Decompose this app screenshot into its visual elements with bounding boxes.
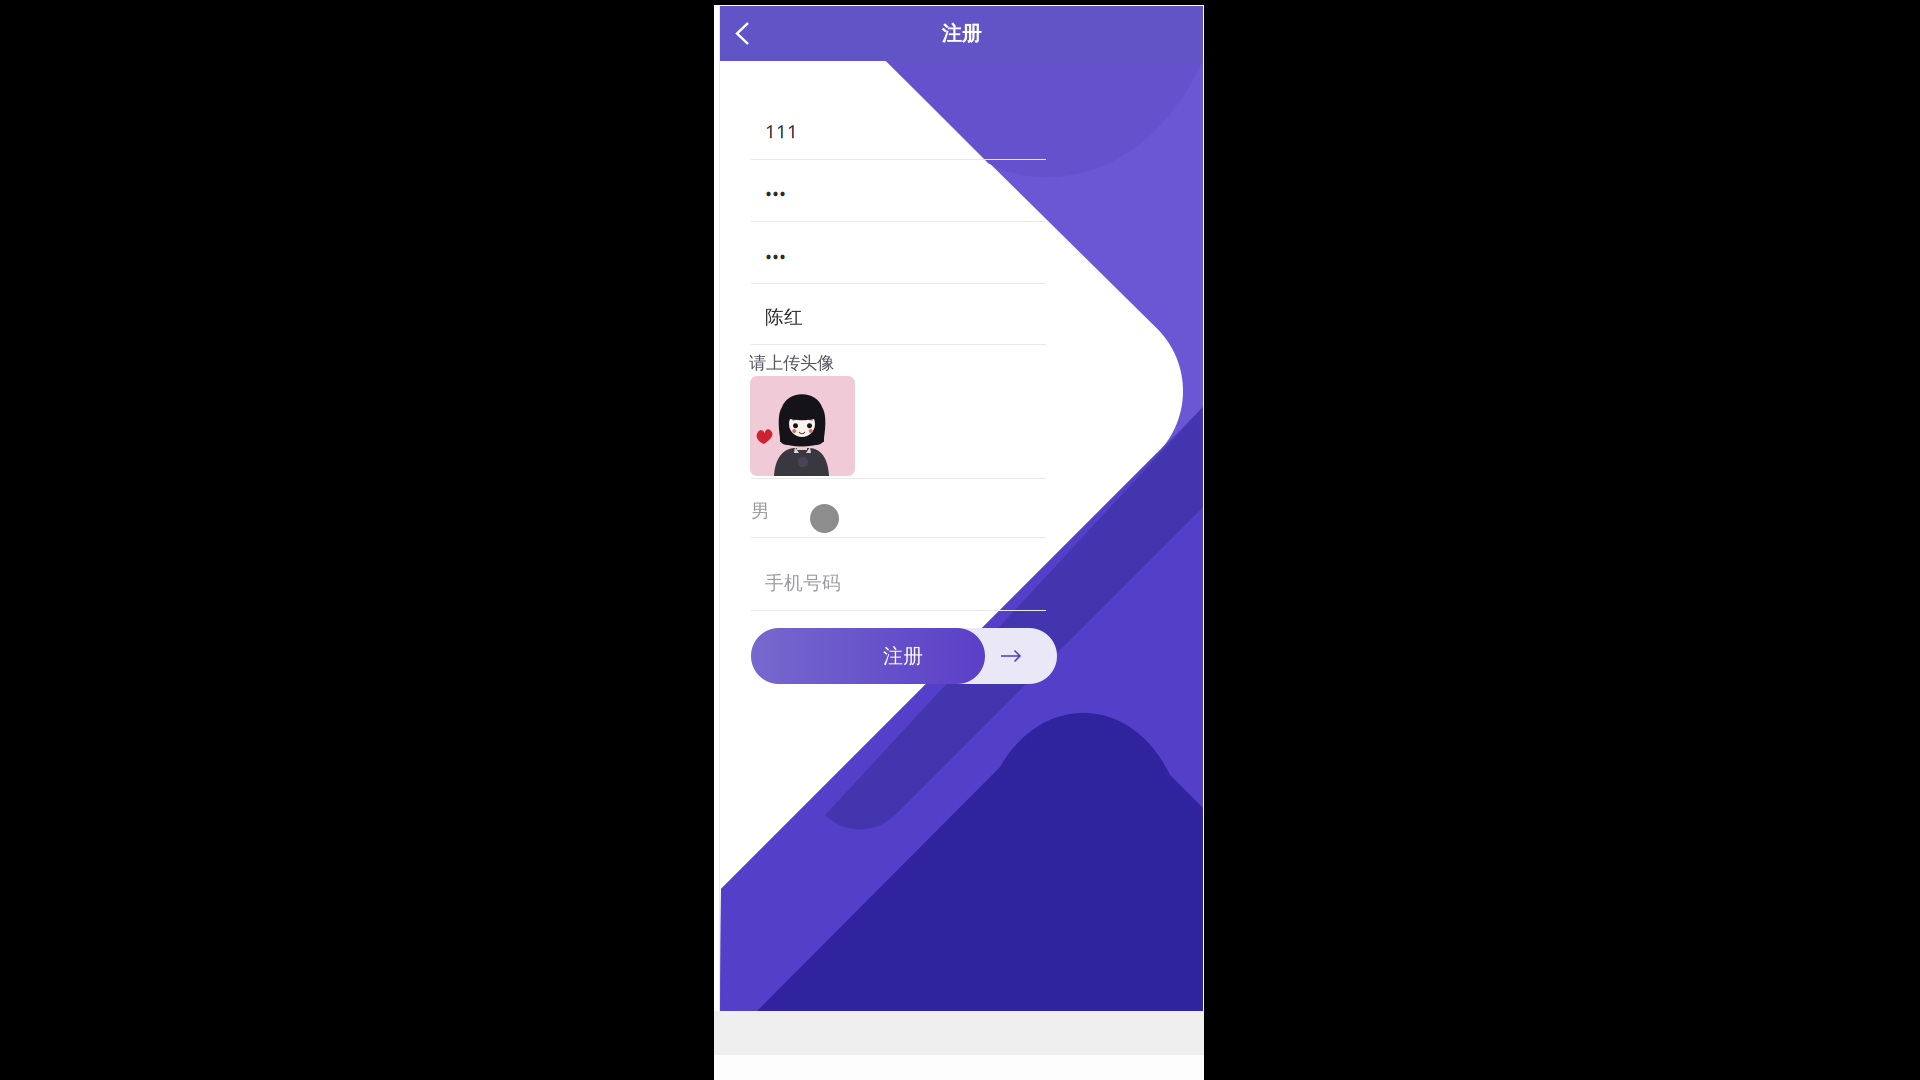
button[interactable]: 注册 — [751, 628, 1057, 684]
staticText: 男 — [751, 499, 770, 522]
staticText: 注册 — [883, 644, 923, 668]
staticText: 111 — [765, 119, 798, 143]
staticText: 请上传头像 — [749, 352, 834, 374]
staticText: ••• — [765, 244, 786, 268]
staticText: 手机号码 — [765, 571, 841, 594]
staticText: 注册 — [941, 21, 981, 46]
button[interactable]: Gender — [810, 504, 839, 533]
button[interactable]: Back — [720, 6, 766, 61]
staticText: ••• — [765, 181, 786, 205]
button[interactable]: Upload avatar — [750, 376, 855, 476]
staticText: 陈红 — [765, 305, 803, 328]
